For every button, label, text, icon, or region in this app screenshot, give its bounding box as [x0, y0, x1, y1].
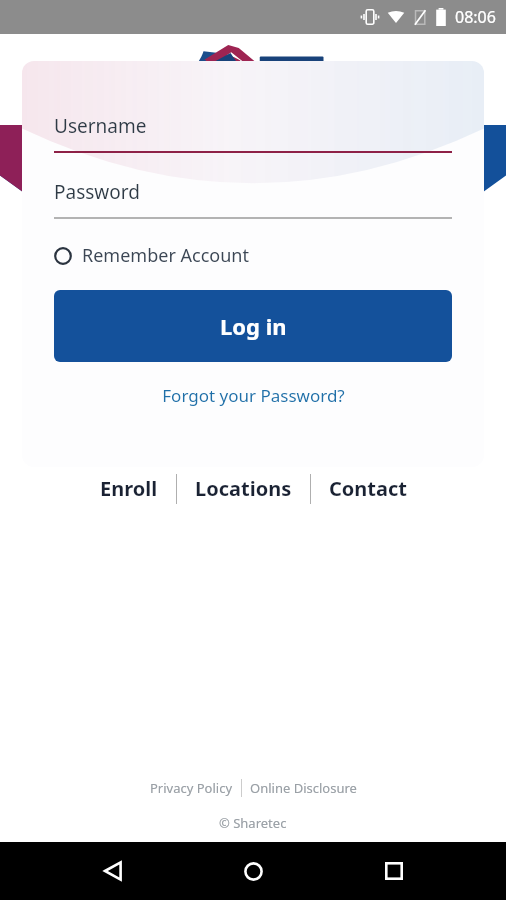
button[interactable]: Contact — [311, 469, 425, 508]
button[interactable]: Online Disclosure — [242, 776, 365, 800]
staticText: Privacy Policy — [150, 779, 233, 797]
staticText: Online Disclosure — [250, 779, 357, 797]
staticText: Enroll — [100, 475, 158, 502]
button[interactable]: Locations — [177, 469, 310, 508]
staticText: Username — [54, 113, 147, 139]
staticText: Log in — [220, 311, 287, 341]
button[interactable]: Forgot your Password? — [54, 384, 452, 407]
button[interactable]: Recent apps — [366, 843, 422, 899]
staticText: © Sharetec — [219, 814, 287, 832]
staticText: Version 2.1.6 — [211, 138, 296, 157]
staticText: Locations — [195, 475, 292, 502]
staticText: Contact — [329, 475, 407, 502]
button[interactable]: Home — [225, 843, 281, 899]
staticText: Forgot your Password? — [162, 384, 345, 407]
button[interactable]: Username — [54, 113, 452, 153]
button[interactable]: Log in — [54, 290, 452, 362]
staticText: 08:06 — [455, 6, 496, 28]
button[interactable]: Back — [85, 843, 141, 899]
button[interactable]: Password — [54, 179, 452, 219]
button[interactable]: Enroll — [82, 469, 176, 508]
staticText: Password — [54, 179, 140, 205]
staticText: Remember Account — [82, 243, 249, 268]
button[interactable]: Remember Account — [54, 243, 452, 268]
button[interactable]: Privacy Policy — [142, 776, 241, 800]
